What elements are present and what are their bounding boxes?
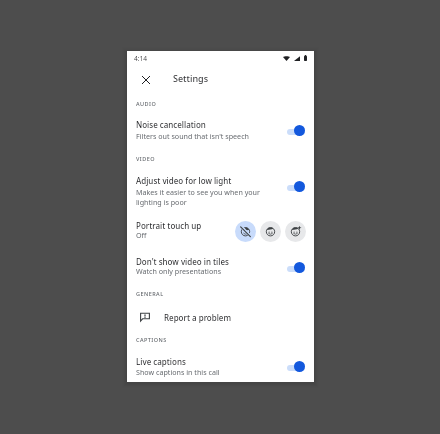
button[interactable]: Toggle Live captions <box>286 359 308 371</box>
staticText: Settings <box>173 72 209 84</box>
staticText: Portrait touch up <box>136 220 202 231</box>
button[interactable]: Touch up smooth <box>285 221 306 242</box>
staticText: Live captions <box>136 356 186 367</box>
button[interactable]: Report a problem <box>127 306 314 328</box>
staticText: Don't show video in tiles <box>136 256 229 267</box>
button[interactable]: Touch up subtle <box>260 221 281 242</box>
button[interactable]: Toggle Adjust video for low light <box>286 179 308 191</box>
button[interactable]: Noise cancellation, Filters out sound th… <box>127 113 314 145</box>
button[interactable]: Portrait touch up, Off <box>127 213 314 247</box>
button[interactable]: Don't show video in tiles, Watch only pr… <box>127 249 314 282</box>
staticText: AUDIO <box>136 100 157 107</box>
staticText: VIDEO <box>136 155 155 162</box>
button[interactable]: Adjust video for low light, Makes it eas… <box>127 168 314 211</box>
button[interactable]: Toggle Don't show video in tiles <box>286 260 308 272</box>
button[interactable]: Live captions, Show captions in this cal… <box>127 349 314 381</box>
staticText: 4:14 <box>134 54 148 63</box>
staticText: Adjust video for low light <box>136 175 232 186</box>
staticText: GENERAL <box>136 290 164 297</box>
button[interactable]: Close <box>137 71 154 88</box>
staticText: Watch only presentations <box>136 266 222 276</box>
staticText: Report a problem <box>164 312 232 323</box>
staticText: Off <box>136 230 147 240</box>
staticText: Filters out sound that isn't speech <box>136 131 249 141</box>
staticText: CAPTIONS <box>136 336 167 343</box>
staticText: Makes it easier to see you when your lig… <box>136 187 260 207</box>
staticText: Show captions in this call <box>136 367 220 377</box>
button[interactable]: Toggle Noise cancellation <box>286 123 308 135</box>
button[interactable]: Touch up off <box>235 221 256 242</box>
staticText: Noise cancellation <box>136 119 206 130</box>
